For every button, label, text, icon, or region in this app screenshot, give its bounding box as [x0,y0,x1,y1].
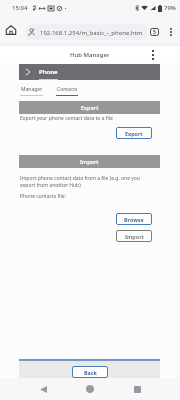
button[interactable]: Home [81,380,99,398]
button[interactable]: Menu [146,46,159,63]
staticText: 192.168.1.254/m_basic_-_phone.htm [40,29,143,37]
staticText: 15:04 [12,4,28,12]
staticText: Export [81,104,99,111]
button[interactable]: Recents [128,380,146,398]
button[interactable]: Export [116,127,152,139]
button[interactable]: Tabs [149,24,160,40]
staticText: Phone contacts file: [20,193,66,200]
button[interactable]: Back [72,366,108,378]
staticText: Back [84,369,97,376]
staticText: Export [125,130,143,137]
button[interactable]: Back [34,380,52,398]
button[interactable]: Import [116,230,152,242]
button[interactable]: More options [164,24,177,40]
staticText: Manager [21,86,43,93]
staticText: Hub Manager [70,51,110,59]
button[interactable]: Manager [20,86,43,96]
button[interactable]: Contacts [56,86,78,96]
staticText: 5 [153,29,156,36]
staticText: Import [125,233,144,240]
staticText: Contacts [57,86,78,93]
button[interactable]: Browse [116,213,152,225]
staticText: 79% [164,4,176,12]
button[interactable]: 192.168.1.254/m_basic_-_phone.htm [25,24,148,40]
staticText: Export your phone contact data to a file [20,115,113,122]
button[interactable]: Phone [19,64,160,80]
staticText: Browse [124,216,144,223]
staticText: Import [80,158,99,165]
button[interactable]: Home [3,22,19,38]
staticText: Import phone contact data from a file (e… [20,175,140,189]
staticText: Phone [39,68,58,76]
